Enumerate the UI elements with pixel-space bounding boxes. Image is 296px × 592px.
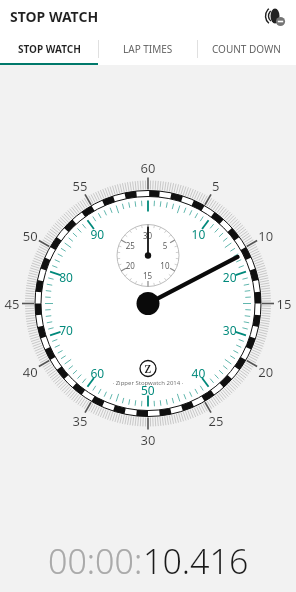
staticText: 10.416 <box>143 538 249 584</box>
staticText: 00:00: <box>48 538 143 584</box>
staticText: STOP WATCH <box>18 42 81 56</box>
button[interactable]: COUNT DOWN <box>197 32 296 65</box>
staticText: COUNT DOWN <box>212 42 281 56</box>
button[interactable]: LAP TIMES <box>98 32 197 65</box>
button[interactable]: STOP WATCH <box>0 32 98 65</box>
button[interactable]: Mute sound <box>262 3 288 29</box>
staticText: LAP TIMES <box>123 42 173 56</box>
staticText: STOP WATCH <box>10 7 99 26</box>
